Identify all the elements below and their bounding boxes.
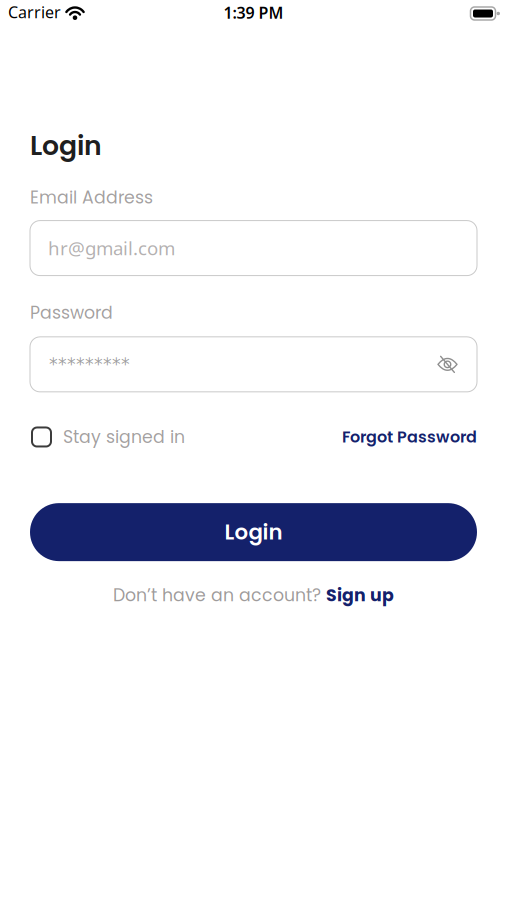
staticText: Email Address xyxy=(30,185,153,210)
staticText: Login xyxy=(224,517,282,547)
staticText: Login xyxy=(30,127,102,164)
staticText: hr@gmail.com xyxy=(48,236,175,260)
staticText: Forgot Password xyxy=(342,426,477,448)
staticText: Stay signed in xyxy=(63,425,185,449)
button[interactable]: Sign up xyxy=(326,583,394,607)
staticText: 1:39 PM xyxy=(223,2,283,23)
staticText: Sign up xyxy=(326,583,394,607)
button[interactable]: Forgot Password xyxy=(342,426,477,448)
staticText: Password xyxy=(30,301,113,325)
button[interactable]: Stay signed in xyxy=(30,425,185,449)
staticText: Don’t have an account? xyxy=(113,583,326,607)
staticText: ********* xyxy=(49,354,130,374)
button[interactable] xyxy=(438,357,477,371)
staticText: Carrier xyxy=(8,1,61,23)
button[interactable]: Login xyxy=(30,503,477,561)
